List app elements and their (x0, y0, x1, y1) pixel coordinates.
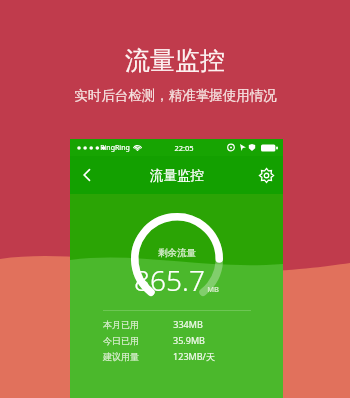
button[interactable]: 今日已用 (103, 334, 251, 346)
staticText: 实时后台检测，精准掌握使用情况 (74, 87, 277, 104)
button[interactable]: Back (70, 158, 104, 192)
staticText: 建议用量 (103, 351, 139, 362)
button[interactable]: Settings (249, 158, 283, 192)
staticText: RingRing (100, 143, 130, 153)
staticText: 流量监控 (125, 45, 225, 76)
staticText: MB (207, 284, 219, 294)
button[interactable]: 建议用量 (103, 350, 251, 362)
staticText: 流量监控 (150, 167, 204, 184)
staticText: 22:05 (174, 143, 194, 153)
staticText: 35.9MB (173, 334, 205, 346)
staticText: 865.7 (134, 261, 205, 299)
staticText: 今日已用 (103, 335, 139, 346)
staticText: 剩余流量 (158, 247, 196, 259)
staticText: 本月已用 (103, 319, 139, 330)
button[interactable]: 本月已用 (103, 318, 251, 330)
staticText: 123MB/天 (173, 350, 215, 362)
staticText: 334MB (173, 318, 203, 330)
